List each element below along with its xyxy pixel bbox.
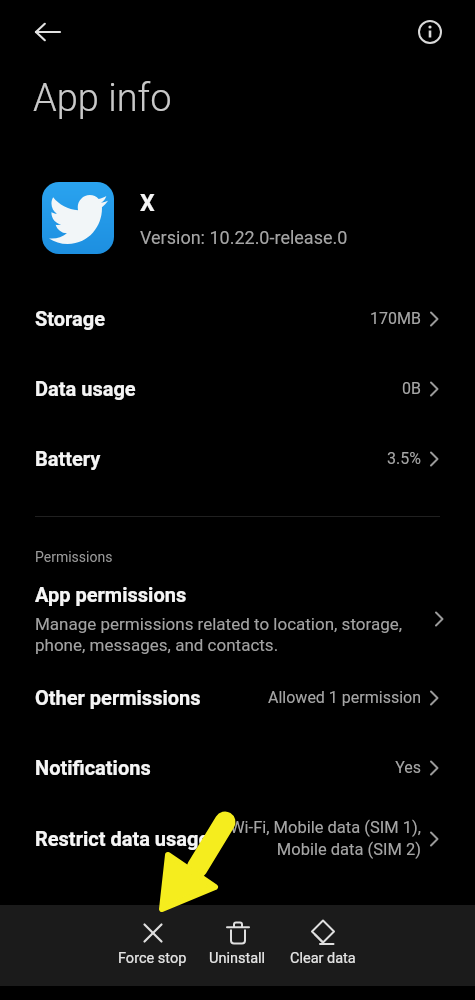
button[interactable]: Notifications: [0, 732, 475, 802]
staticText: Yes: [395, 758, 421, 777]
staticText: Version: 10.22.0-release.0: [140, 227, 348, 248]
button[interactable]: Force stop: [110, 919, 195, 967]
staticText: Data usage: [35, 377, 136, 400]
staticText: Allowed 1 permission: [268, 688, 421, 707]
staticText: 3.5%: [387, 449, 421, 468]
button[interactable]: Uninstall: [195, 919, 280, 967]
button[interactable]: Battery: [0, 423, 475, 493]
button[interactable]: Storage: [0, 283, 475, 353]
button[interactable]: Other permissions: [0, 662, 475, 732]
button[interactable]: App permissions: [0, 577, 475, 660]
staticText: Storage: [35, 307, 106, 330]
staticText: App info: [33, 76, 172, 121]
staticText: Uninstall: [209, 950, 266, 967]
staticText: Other permissions: [35, 686, 201, 709]
staticText: Restrict data usage: [35, 827, 210, 850]
staticText: Notifications: [35, 756, 151, 779]
staticText: Clear data: [290, 950, 356, 967]
button[interactable]: [408, 10, 452, 54]
button[interactable]: Data usage: [0, 353, 475, 423]
staticText: Force stop: [118, 950, 187, 967]
button[interactable]: Clear data: [280, 919, 365, 967]
staticText: Manage permissions related to location, …: [35, 614, 403, 656]
staticText: 170MB: [370, 309, 421, 328]
button[interactable]: Restrict data usage: [0, 803, 475, 873]
button[interactable]: [24, 18, 68, 48]
staticText: Permissions: [35, 549, 113, 565]
staticText: X: [140, 190, 155, 217]
staticText: Wi-Fi, Mobile data (SIM 1), Mobile data …: [229, 818, 421, 859]
staticText: Battery: [35, 447, 101, 470]
staticText: 0B: [402, 379, 421, 398]
staticText: App permissions: [35, 583, 187, 606]
